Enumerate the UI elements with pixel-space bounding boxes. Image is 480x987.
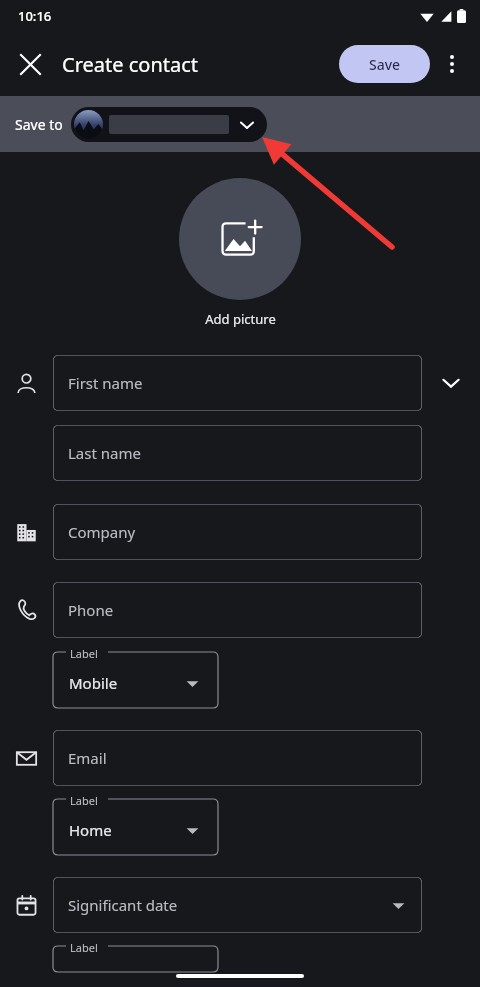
staticText: Create contact — [62, 51, 199, 78]
staticText: Add picture — [205, 310, 276, 328]
button[interactable]: Last name — [53, 425, 422, 481]
button[interactable]: Close — [10, 44, 50, 84]
staticText: Save to — [15, 115, 63, 134]
button[interactable]: Significant date — [53, 877, 422, 933]
staticText: Save — [369, 55, 401, 74]
button[interactable]: Email — [53, 730, 422, 786]
staticText: Mobile — [69, 673, 118, 693]
staticText: Home — [69, 820, 112, 840]
button[interactable]: Label — [53, 799, 218, 855]
button[interactable]: Add picture — [179, 178, 301, 300]
button[interactable]: Expand name fields — [422, 355, 480, 411]
staticText: 10:16 — [18, 7, 52, 25]
button[interactable]: Select account to save to — [71, 107, 267, 142]
staticText: Email — [68, 748, 107, 768]
staticText: Last name — [68, 443, 141, 463]
staticText: First name — [68, 373, 143, 393]
button[interactable]: Company — [53, 504, 422, 560]
button[interactable]: Label — [53, 652, 218, 708]
button[interactable]: First name — [53, 355, 422, 411]
button[interactable]: More options — [432, 44, 472, 84]
staticText: Label — [70, 940, 98, 955]
staticText: Label — [70, 646, 98, 661]
staticText: Company — [68, 522, 136, 542]
button[interactable]: Phone — [53, 582, 422, 638]
staticText: Phone — [68, 600, 114, 620]
staticText: Label — [70, 793, 98, 808]
button[interactable]: Save — [339, 45, 430, 83]
staticText: Significant date — [68, 895, 178, 915]
